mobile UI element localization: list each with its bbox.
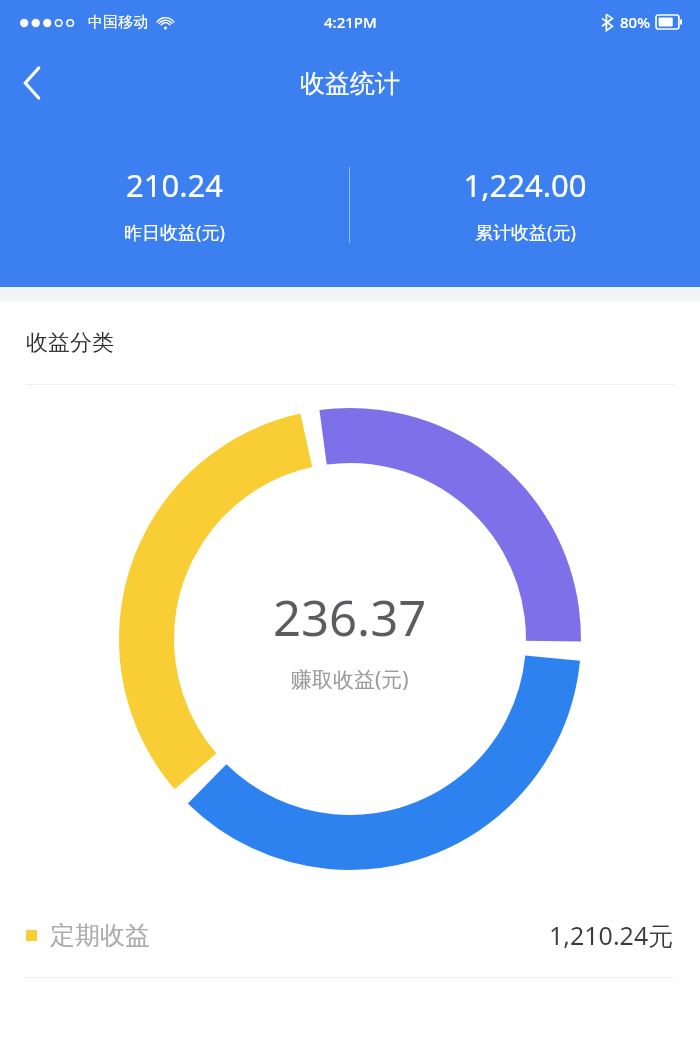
button[interactable]: Back <box>0 44 64 122</box>
staticText: 1,224.00 <box>463 164 587 206</box>
button[interactable]: 210.24 <box>0 154 349 255</box>
staticText: 累计收益(元) <box>475 220 576 245</box>
button[interactable]: 1,224.00 <box>350 154 700 255</box>
staticText: 昨日收益(元) <box>124 220 225 245</box>
staticText: 80% <box>620 12 650 32</box>
staticText: 收益分类 <box>26 329 114 357</box>
staticText: 定期收益 <box>50 920 150 951</box>
staticText: 收益统计 <box>300 68 400 99</box>
staticText: 210.24 <box>126 164 223 206</box>
staticText: 4:21PM <box>324 12 377 32</box>
staticText: 中国移动 <box>88 13 148 32</box>
staticText: 236.37 <box>273 584 427 651</box>
staticText: 赚取收益(元) <box>291 665 409 694</box>
staticText: 1,210.24元 <box>549 918 674 952</box>
button[interactable]: 定期收益 <box>0 893 700 977</box>
